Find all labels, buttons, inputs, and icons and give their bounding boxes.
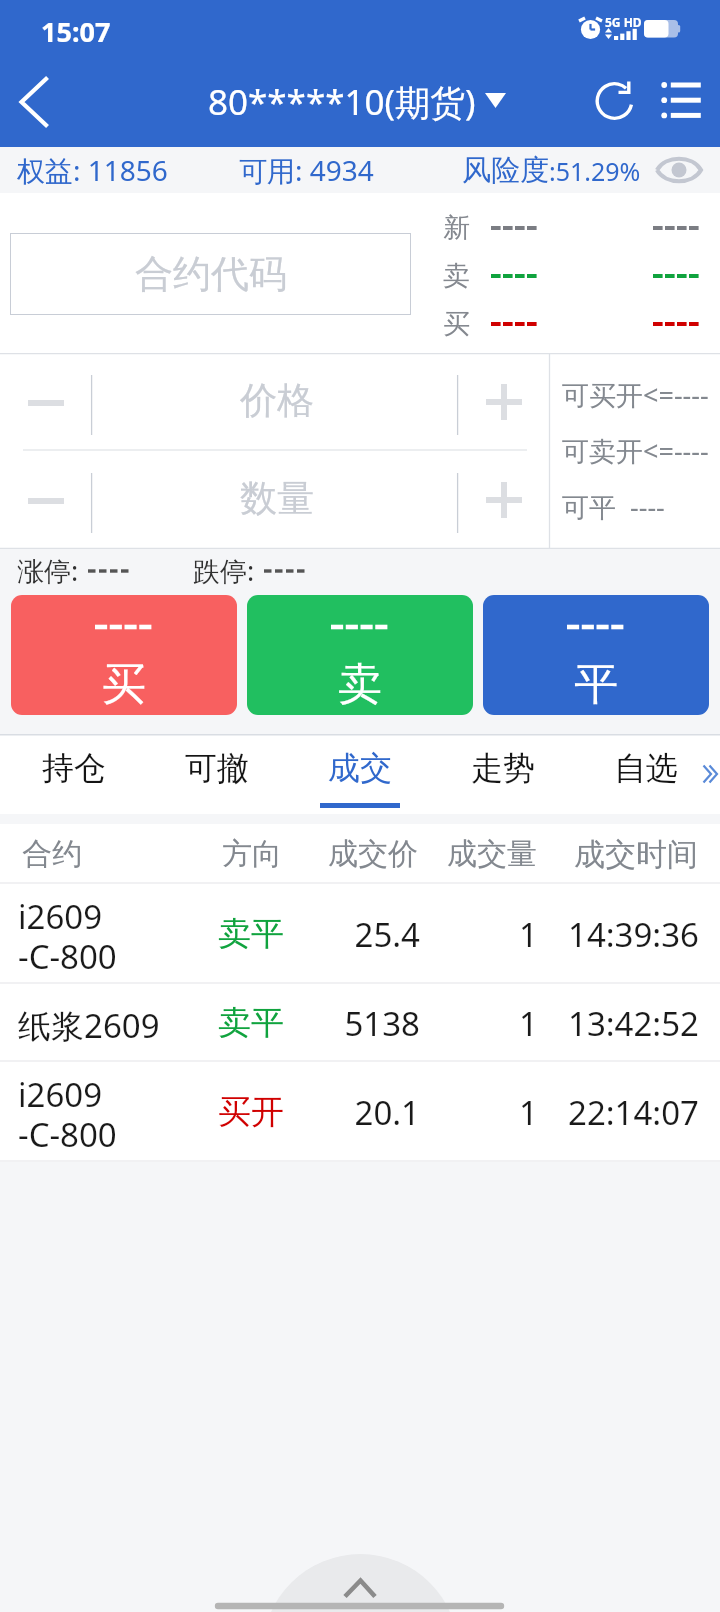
button[interactable]: Increase 价格 bbox=[458, 353, 549, 451]
staticText: 成交量 bbox=[447, 835, 537, 873]
staticText: 平 bbox=[574, 657, 618, 712]
staticText: 25.4 bbox=[300, 912, 420, 957]
staticText: 1 bbox=[440, 912, 538, 957]
staticText: 5G HD bbox=[605, 14, 642, 30]
staticText: 买 bbox=[443, 307, 470, 341]
staticText: 80*****10(期货) bbox=[208, 78, 476, 126]
button[interactable]: 合约代码 bbox=[10, 233, 411, 315]
staticText: 可买开<=---- bbox=[562, 376, 709, 413]
staticText: 涨停: bbox=[17, 552, 79, 589]
staticText: 合约代码 bbox=[135, 250, 287, 298]
staticText: 成交时间 bbox=[574, 835, 698, 874]
button[interactable]: 买 bbox=[11, 595, 237, 715]
staticText: 数量 bbox=[240, 475, 314, 522]
button[interactable]: 80*****10(期货) bbox=[208, 78, 506, 126]
staticText: 自选 bbox=[614, 748, 678, 788]
staticText: 22:14:07 bbox=[568, 1090, 699, 1135]
button[interactable]: i2609 -C-800 bbox=[0, 1062, 720, 1162]
staticText: 可撤 bbox=[185, 748, 249, 788]
staticText: 持仓 bbox=[42, 748, 106, 788]
staticText: 走势 bbox=[471, 748, 535, 788]
staticText: 13:42:52 bbox=[568, 1001, 699, 1046]
staticText: 新 bbox=[443, 211, 470, 245]
staticText: 纸浆2609 bbox=[18, 1003, 160, 1048]
button[interactable]: 平 bbox=[483, 595, 709, 715]
staticText: 1 bbox=[440, 1090, 538, 1135]
button[interactable]: Menu bbox=[650, 60, 720, 142]
staticText: 买 bbox=[102, 657, 146, 712]
staticText: 权益: 11856 bbox=[17, 151, 168, 189]
button[interactable]: 卖 bbox=[247, 595, 473, 715]
staticText: 可平 ---- bbox=[562, 488, 665, 525]
button[interactable]: Toggle visibility bbox=[640, 147, 718, 193]
button[interactable]: Decrease 价格 bbox=[0, 353, 91, 451]
button[interactable]: Decrease 数量 bbox=[0, 451, 91, 549]
staticText: 成交 bbox=[328, 748, 392, 788]
staticText: 合约 bbox=[22, 835, 82, 873]
staticText: i2609 -C-800 bbox=[18, 894, 117, 979]
staticText: 跌停: bbox=[193, 552, 255, 589]
staticText: 20.1 bbox=[300, 1090, 420, 1135]
staticText: 价格 bbox=[240, 377, 314, 424]
button[interactable]: More tabs bbox=[688, 734, 720, 814]
staticText: :51.29% bbox=[549, 154, 641, 188]
staticText: 可卖开<=---- bbox=[562, 432, 709, 469]
button[interactable]: 纸浆2609 bbox=[0, 984, 720, 1062]
staticText: i2609 -C-800 bbox=[18, 1072, 117, 1157]
staticText: 5138 bbox=[300, 1001, 420, 1046]
button[interactable]: Increase 数量 bbox=[458, 451, 549, 549]
button[interactable]: 走势 bbox=[431, 734, 574, 814]
button[interactable]: 持仓 bbox=[2, 734, 145, 814]
staticText: 15:07 bbox=[41, 13, 111, 50]
button[interactable]: 可撤 bbox=[145, 734, 288, 814]
staticText: 成交价 bbox=[328, 835, 418, 873]
staticText: 卖平 bbox=[218, 1002, 284, 1044]
staticText: 卖 bbox=[338, 657, 382, 712]
staticText: 卖平 bbox=[218, 913, 284, 955]
staticText: 卖 bbox=[443, 259, 470, 293]
staticText: 风险度 bbox=[462, 152, 549, 189]
button[interactable]: Refresh bbox=[578, 60, 652, 142]
staticText: 方向 bbox=[222, 835, 282, 873]
staticText: 可用: 4934 bbox=[239, 151, 374, 189]
staticText: 14:39:36 bbox=[568, 912, 699, 957]
staticText: 买开 bbox=[218, 1091, 284, 1133]
button[interactable]: 成交 bbox=[288, 734, 431, 814]
button[interactable]: 自选 bbox=[574, 734, 717, 814]
button[interactable]: i2609 -C-800 bbox=[0, 884, 720, 984]
staticText: 1 bbox=[440, 1001, 538, 1046]
button[interactable]: Back bbox=[0, 57, 72, 147]
